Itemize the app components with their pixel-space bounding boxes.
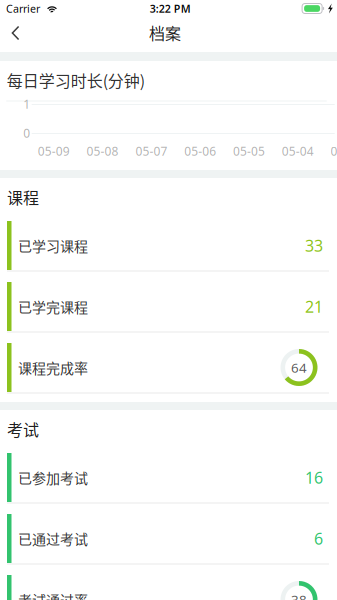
button[interactable]: 已通过考试	[0, 514, 337, 563]
staticText: 已通过考试	[18, 528, 88, 549]
staticText: 每日学习时长(分钟)	[7, 68, 145, 92]
staticText: 0	[23, 125, 30, 141]
staticText: 16	[305, 467, 323, 488]
staticText: 已学完课程	[18, 296, 88, 317]
staticText: 3:22 PM	[150, 1, 191, 16]
staticText: 05-07	[135, 143, 167, 159]
button[interactable]: 已学完课程	[0, 282, 337, 331]
staticText: 课程	[7, 185, 39, 209]
staticText: 考试	[7, 417, 39, 441]
button[interactable]: 已学习课程	[0, 221, 337, 270]
staticText: 考试通过率	[18, 589, 88, 600]
button[interactable]: 已参加考试	[0, 453, 337, 502]
button[interactable]: 课程完成率	[0, 343, 337, 392]
staticText: 05-03	[331, 143, 337, 159]
staticText: 课程完成率	[18, 357, 88, 378]
button[interactable]: Back	[0, 18, 31, 51]
staticText: 21	[305, 296, 323, 317]
staticText: 33	[305, 235, 323, 256]
staticText: 05-04	[282, 143, 314, 159]
button[interactable]: 考试通过率	[0, 575, 337, 600]
staticText: 38	[291, 591, 307, 600]
staticText: Carrier	[6, 1, 40, 16]
staticText: 1	[23, 96, 30, 112]
staticText: 6	[314, 528, 323, 549]
staticText: 05-06	[184, 143, 216, 159]
staticText: 05-05	[233, 143, 265, 159]
staticText: 64	[291, 359, 307, 376]
staticText: 已参加考试	[18, 467, 88, 488]
staticText: 05-08	[87, 143, 119, 159]
staticText: 05-09	[38, 143, 70, 159]
staticText: 档案	[149, 21, 181, 44]
staticText: 已学习课程	[18, 235, 88, 256]
